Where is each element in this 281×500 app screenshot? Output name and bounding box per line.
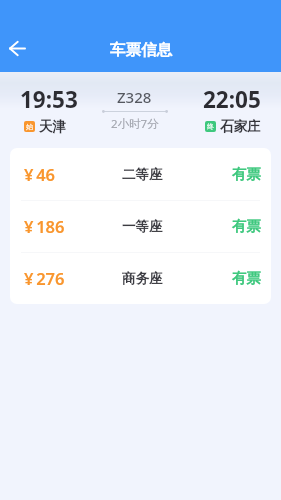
button[interactable]: ¥ 46 [10, 148, 271, 200]
staticText: ¥ 46 [24, 163, 122, 185]
staticText: 始 [26, 122, 33, 131]
button[interactable]: ¥ 276 [10, 252, 271, 304]
staticText: 商务座 [122, 270, 163, 287]
staticText: 一等座 [122, 218, 163, 235]
staticText: ¥ 276 [24, 267, 122, 289]
staticText: 天津 [39, 118, 66, 135]
staticText: 19:53 [20, 84, 78, 115]
staticText: 22:05 [203, 84, 261, 115]
staticText: 有票 [163, 217, 261, 235]
staticText: Z328 [117, 87, 152, 107]
staticText: 终 [207, 122, 214, 131]
button[interactable]: ¥ 186 [10, 200, 271, 252]
staticText: ¥ 186 [24, 215, 122, 237]
staticText: 有票 [163, 165, 261, 183]
staticText: 2小时7分 [111, 116, 159, 132]
staticText: 二等座 [122, 166, 163, 183]
staticText: 车票信息 [110, 40, 172, 60]
button[interactable]: Back [2, 33, 33, 64]
staticText: 石家庄 [220, 118, 261, 135]
staticText: 有票 [163, 269, 261, 287]
